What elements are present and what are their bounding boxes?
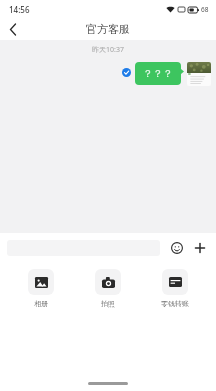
button[interactable]: Avatar — [187, 62, 211, 86]
staticText: 拍照 — [101, 299, 115, 308]
staticText: 官方客服 — [86, 22, 130, 36]
button[interactable]: Back — [0, 18, 26, 40]
staticText: ？？？ — [143, 67, 173, 80]
button[interactable]: ？？？ — [135, 62, 184, 85]
staticText: 相册 — [34, 299, 48, 308]
staticText: 14:56 — [9, 4, 30, 15]
staticText: 昨天10:37 — [0, 45, 216, 55]
staticText: 68 — [201, 5, 209, 14]
button[interactable]: 相册 — [18, 269, 64, 308]
button[interactable]: 拍照 — [85, 269, 131, 308]
button[interactable]: More — [192, 240, 208, 256]
button[interactable]: 零钱转账 — [152, 269, 198, 308]
button[interactable]: Emoji — [169, 240, 185, 256]
staticText: 零钱转账 — [161, 299, 189, 308]
